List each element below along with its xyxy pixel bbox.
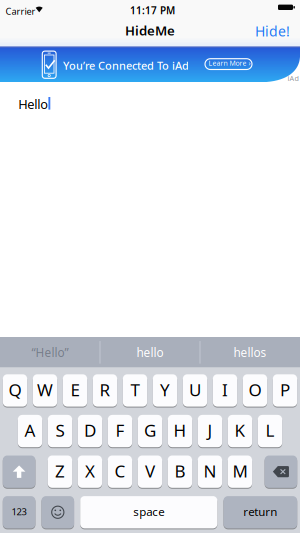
button[interactable]: T [123, 374, 147, 407]
staticText: “Hello” [31, 344, 68, 360]
staticText: L [265, 419, 274, 442]
button[interactable]: F [108, 414, 132, 448]
staticText: N [203, 460, 216, 482]
button[interactable]: H [168, 414, 192, 448]
button[interactable]: “Hello” [0, 337, 99, 368]
staticText: B [174, 460, 185, 482]
staticText: R [99, 378, 110, 401]
staticText: X [85, 460, 95, 482]
staticText: You’re Connected To iAd [63, 58, 189, 73]
button[interactable]: A [18, 414, 42, 448]
staticText: P [280, 378, 290, 401]
staticText: Hello [18, 96, 48, 113]
staticText: G [144, 419, 156, 442]
staticText: hello [136, 344, 163, 360]
button[interactable]: Z [48, 455, 72, 488]
button[interactable]: C [108, 455, 132, 488]
button[interactable]: W [33, 374, 57, 407]
button[interactable]: R [93, 374, 117, 407]
staticText: U [189, 378, 201, 401]
staticText: hellos [233, 344, 266, 360]
staticText: W [37, 378, 53, 401]
button[interactable]: N [198, 455, 222, 488]
button[interactable]: hello [100, 337, 199, 368]
staticText: return [243, 504, 277, 519]
button[interactable]: O [243, 374, 267, 407]
staticText: E [70, 378, 79, 401]
button[interactable]: J [198, 414, 222, 448]
button[interactable]: return [223, 496, 297, 529]
button[interactable]: 123 [3, 496, 35, 529]
button[interactable]: E [63, 374, 87, 407]
staticText: Carrier [5, 5, 35, 17]
staticText: 123 [12, 505, 27, 518]
button[interactable]: Y [153, 374, 177, 407]
button[interactable]: M [228, 455, 252, 488]
staticText: Q [8, 378, 21, 401]
button[interactable] [265, 455, 297, 488]
button[interactable]: hellos [200, 337, 299, 368]
button[interactable]: X [78, 455, 102, 488]
staticText: M [232, 460, 247, 482]
button[interactable]: V [138, 455, 162, 488]
staticText: Y [160, 378, 170, 401]
button[interactable] [3, 455, 35, 488]
button[interactable]: Hide! [255, 23, 290, 42]
button[interactable]: You’re Connected To iAd [0, 46, 300, 82]
staticText: Z [55, 460, 65, 482]
staticText: Learn More › [208, 59, 250, 68]
staticText: D [84, 419, 96, 442]
staticText: K [234, 419, 245, 442]
staticText: T [130, 378, 139, 401]
staticText: A [24, 419, 35, 442]
staticText: V [145, 460, 155, 482]
staticText: 11:17 PM [130, 4, 175, 17]
staticText: O [248, 378, 261, 401]
staticText: F [115, 419, 124, 442]
button[interactable]: Learn More › [205, 59, 252, 69]
button[interactable]: P [273, 374, 297, 407]
staticText: H [173, 419, 186, 442]
staticText: S [55, 419, 64, 442]
button[interactable]: B [168, 455, 192, 488]
button[interactable]: Q [3, 374, 27, 407]
button[interactable] [41, 496, 74, 529]
staticText: iAd [287, 73, 298, 83]
staticText: C [114, 460, 125, 482]
button[interactable]: U [183, 374, 207, 407]
button[interactable]: D [78, 414, 102, 448]
button[interactable]: K [228, 414, 252, 448]
button[interactable]: G [138, 414, 162, 448]
button[interactable]: I [213, 374, 237, 407]
staticText: Hide! [255, 22, 290, 40]
button[interactable]: S [48, 414, 72, 448]
button[interactable]: space [80, 496, 217, 529]
staticText: J [207, 419, 212, 442]
staticText: HideMe [125, 21, 175, 39]
staticText: I [222, 378, 228, 401]
button[interactable]: L [258, 414, 282, 448]
staticText: space [133, 504, 164, 519]
